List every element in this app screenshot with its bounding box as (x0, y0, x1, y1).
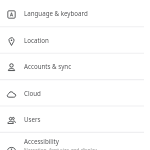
staticText: Cloud (24, 89, 41, 97)
staticText: Language & keyboard (24, 9, 88, 17)
staticText: Users (24, 115, 41, 123)
button[interactable]: Accessibility (0, 132, 150, 150)
button[interactable]: Cloud (0, 80, 150, 106)
staticText: Narration, font size and display (24, 147, 98, 150)
staticText: Accessibility (24, 137, 59, 145)
button[interactable]: Users (0, 106, 150, 132)
staticText: Location (24, 36, 49, 44)
button[interactable]: Location (0, 27, 150, 53)
button[interactable]: Accounts & sync (0, 53, 150, 79)
button[interactable]: Language & keyboard (0, 0, 150, 26)
staticText: Accounts & sync (24, 62, 72, 70)
